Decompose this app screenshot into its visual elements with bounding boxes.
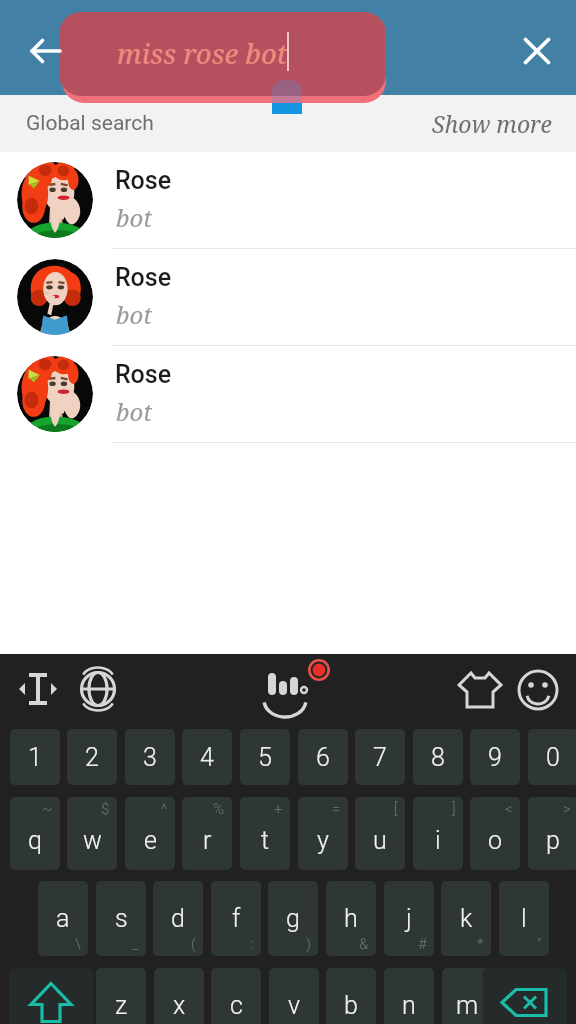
staticText: 6 (316, 743, 330, 772)
button[interactable]: r (182, 797, 232, 870)
staticText: > (563, 800, 571, 818)
button[interactable]: 7 (355, 729, 405, 785)
staticText: = (332, 800, 341, 818)
staticText: r (203, 826, 212, 855)
staticText: + (274, 800, 283, 818)
staticText: t (261, 826, 270, 855)
staticText: s (115, 904, 128, 933)
button[interactable]: n (384, 968, 434, 1024)
staticText: 3 (143, 743, 157, 772)
staticText: i (435, 826, 441, 855)
button[interactable]: Themes (452, 662, 508, 718)
button[interactable]: j (384, 881, 434, 956)
staticText: Rose (115, 166, 172, 195)
button[interactable]: v (269, 968, 319, 1024)
staticText: h (344, 904, 358, 933)
button[interactable]: y (298, 797, 348, 870)
button[interactable]: w (67, 797, 117, 870)
button[interactable]: h (326, 881, 376, 956)
staticText: 0 (546, 743, 560, 772)
button[interactable]: Cursor control (10, 661, 66, 717)
staticText: & (359, 935, 369, 953)
button[interactable]: 4 (182, 729, 232, 785)
staticText: # (418, 935, 427, 953)
button[interactable]: Shift (9, 968, 93, 1024)
button[interactable]: d (153, 881, 203, 956)
staticText: bot (116, 298, 153, 331)
staticText: 1 (28, 743, 42, 772)
staticText: k (460, 904, 473, 933)
button[interactable]: o (470, 797, 520, 870)
button[interactable]: Clear search (509, 23, 565, 79)
staticText: ~ (42, 800, 53, 818)
button[interactable]: 0 (528, 729, 576, 785)
button[interactable]: 6 (298, 729, 348, 785)
staticText: " (537, 935, 542, 953)
staticText: _ (132, 935, 139, 953)
staticText: e (144, 826, 157, 855)
staticText: ] (452, 800, 456, 818)
staticText: q (28, 826, 42, 855)
button[interactable]: t (240, 797, 290, 870)
button[interactable]: g (268, 881, 318, 956)
button[interactable]: Backspace (483, 968, 567, 1024)
staticText: 7 (373, 743, 387, 772)
staticText: z (115, 991, 128, 1020)
staticText: ^ (161, 800, 168, 818)
button[interactable]: 5 (240, 729, 290, 785)
button[interactable]: e (125, 797, 175, 870)
button[interactable]: Emoji (510, 662, 566, 718)
button[interactable]: Keyboard menu (253, 655, 323, 725)
button[interactable]: z (96, 968, 146, 1024)
staticText: v (288, 991, 301, 1020)
button[interactable]: q (10, 797, 60, 870)
staticText: f (232, 904, 241, 933)
button[interactable]: f (211, 881, 261, 956)
button[interactable]: a (38, 881, 88, 956)
button[interactable]: Show more (432, 108, 552, 139)
button[interactable]: Rose (0, 346, 576, 443)
button[interactable]: 3 (125, 729, 175, 785)
staticText: x (173, 991, 186, 1020)
staticText: u (373, 826, 387, 855)
staticText: 4 (200, 743, 214, 772)
button[interactable]: s (96, 881, 146, 956)
button[interactable]: Back (17, 23, 73, 79)
button[interactable]: m (442, 968, 492, 1024)
staticText: ( (191, 935, 196, 953)
button[interactable]: l (499, 881, 549, 956)
button[interactable]: Change language (70, 661, 126, 717)
staticText: 9 (488, 743, 502, 772)
staticText: bot (116, 201, 153, 234)
staticText: m (456, 991, 479, 1020)
button[interactable]: b (326, 968, 376, 1024)
staticText: * (477, 935, 484, 953)
staticText: ) (306, 935, 311, 953)
staticText: g (286, 904, 300, 933)
button[interactable]: u (355, 797, 405, 870)
button[interactable]: Rose (0, 249, 576, 346)
button[interactable]: p (528, 797, 576, 870)
button[interactable]: 8 (413, 729, 463, 785)
staticText: l (521, 904, 527, 933)
button[interactable]: 2 (67, 729, 117, 785)
button[interactable]: Rose (0, 152, 576, 249)
staticText: 5 (258, 743, 272, 772)
button[interactable]: 1 (10, 729, 60, 785)
button[interactable]: x (154, 968, 204, 1024)
staticText: d (171, 904, 185, 933)
button[interactable]: c (211, 968, 261, 1024)
button[interactable]: k (441, 881, 491, 956)
staticText: miss rose bot (117, 35, 288, 72)
staticText: b (344, 991, 358, 1020)
button[interactable]: 9 (470, 729, 520, 785)
button[interactable]: i (413, 797, 463, 870)
staticText: Rose (115, 360, 172, 389)
staticText: < (505, 800, 513, 818)
staticText: o (488, 826, 503, 855)
staticText: j (406, 904, 412, 933)
staticText: bot (116, 395, 153, 428)
